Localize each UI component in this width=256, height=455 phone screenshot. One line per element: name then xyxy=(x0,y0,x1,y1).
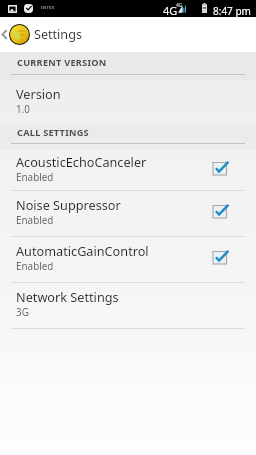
staticText: Network Settings xyxy=(16,288,119,305)
button[interactable]: Noise Suppressor xyxy=(0,191,256,237)
staticText: Noise Suppressor xyxy=(16,196,121,213)
staticText: Enabled xyxy=(16,259,54,272)
staticText: INTEX xyxy=(41,5,55,11)
staticText: Version xyxy=(16,85,61,102)
button[interactable]: AutomaticGainControl xyxy=(0,237,256,283)
staticText: 3G xyxy=(16,305,29,318)
staticText: 8:47 pm xyxy=(213,4,251,18)
staticText: CALL SETTINGS xyxy=(17,126,89,139)
button[interactable]: Network Settings xyxy=(0,283,256,329)
staticText: Enabled xyxy=(16,213,54,226)
button[interactable]: AcousticEchoCanceler xyxy=(0,150,256,191)
staticText: Enabled xyxy=(16,170,54,183)
staticText: 1.0 xyxy=(16,102,30,115)
staticText: AutomaticGainControl xyxy=(16,242,149,259)
staticText: CURRENT VERSION xyxy=(17,56,107,69)
staticText: 4G xyxy=(176,2,183,9)
staticText: Settings xyxy=(34,26,82,43)
button[interactable]: Navigate up xyxy=(0,17,34,52)
staticText: AcousticEchoCanceler xyxy=(16,153,147,170)
button[interactable]: Version xyxy=(0,80,256,125)
staticText: 4G xyxy=(163,3,178,18)
